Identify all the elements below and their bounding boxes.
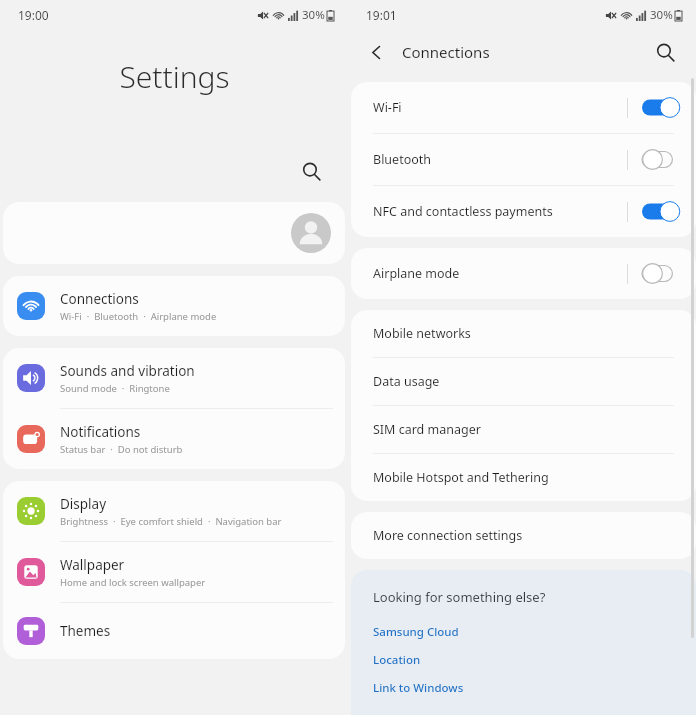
staticText: 19:01 [366, 7, 397, 23]
button[interactable]: Mobile Hotspot and Tethering [351, 454, 696, 501]
button[interactable]: Link to Windows [373, 674, 696, 702]
button[interactable]: Wallpaper [3, 542, 345, 602]
button[interactable]: Wi-Fi [351, 82, 696, 133]
button[interactable]: Samsung Cloud [373, 618, 696, 646]
staticText: Sound mode · Ringtone [60, 382, 170, 395]
staticText: SIM card manager [373, 421, 481, 438]
button[interactable]: Data usage [351, 358, 696, 405]
staticText: 19:00 [18, 7, 49, 23]
button[interactable]: Search [294, 154, 328, 188]
button[interactable] [3, 202, 345, 264]
button[interactable]: NFC and contactless payments [351, 186, 696, 237]
staticText: Display [60, 495, 107, 513]
staticText: Home and lock screen wallpaper [60, 576, 206, 589]
button[interactable]: Back [360, 36, 392, 68]
staticText: Sounds and vibration [60, 362, 195, 380]
staticText: More connection settings [373, 527, 523, 544]
button[interactable]: Search [648, 35, 682, 69]
staticText: Connections [402, 42, 490, 62]
staticText: Themes [60, 622, 111, 640]
staticText: Bluetooth [373, 151, 432, 168]
button[interactable]: Notifications [3, 409, 345, 469]
staticText: Notifications [60, 423, 141, 441]
staticText: 30% [302, 7, 325, 23]
staticText: Brightness · Eye comfort shield · Naviga… [60, 515, 282, 528]
button[interactable]: Display [3, 481, 345, 541]
button[interactable]: NFC and contactless payments [642, 201, 680, 222]
button[interactable]: Themes [3, 603, 345, 659]
staticText: Location [373, 652, 421, 668]
staticText: Settings [119, 56, 230, 97]
staticText: Link to Windows [373, 680, 464, 696]
button[interactable]: Location [373, 646, 696, 674]
button[interactable]: Mobile networks [351, 310, 696, 357]
staticText: Airplane mode [373, 265, 460, 282]
staticText: Mobile Hotspot and Tethering [373, 469, 549, 486]
button[interactable]: More connection settings [351, 512, 696, 559]
button[interactable]: SIM card manager [351, 406, 696, 453]
staticText: Samsung Cloud [373, 624, 459, 640]
staticText: Wallpaper [60, 556, 125, 574]
staticText: Wi-Fi [373, 99, 402, 116]
button[interactable]: Airplane mode [642, 263, 680, 284]
button[interactable]: Connections [3, 276, 345, 336]
staticText: Looking for something else? [373, 588, 546, 606]
button[interactable]: Sounds and vibration [3, 348, 345, 408]
button[interactable]: Airplane mode [351, 248, 696, 299]
staticText: Data usage [373, 373, 440, 390]
staticText: NFC and contactless payments [373, 203, 553, 220]
button[interactable]: Bluetooth [351, 134, 696, 185]
staticText: Connections [60, 290, 139, 308]
staticText: 30% [650, 7, 673, 23]
staticText: Status bar · Do not disturb [60, 443, 183, 456]
staticText: Wi-Fi · Bluetooth · Airplane mode [60, 310, 217, 323]
staticText: Mobile networks [373, 325, 471, 342]
button[interactable]: Wi-Fi [642, 97, 680, 118]
button[interactable]: Bluetooth [642, 149, 680, 170]
